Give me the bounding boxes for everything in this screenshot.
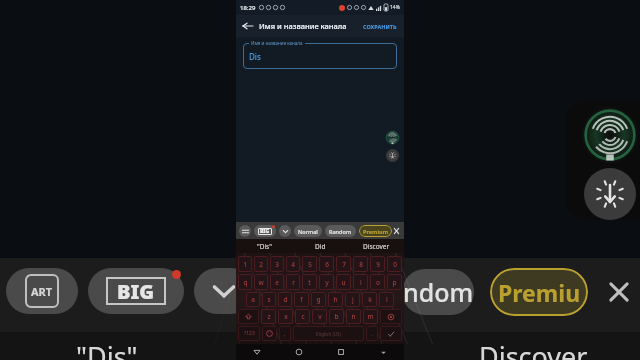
button[interactable]: Keyboard settings (239, 225, 251, 237)
button[interactable]: v (312, 309, 327, 324)
button[interactable]: 5 (302, 256, 317, 272)
button[interactable]: w (254, 274, 268, 290)
button[interactable]: Shift (238, 309, 259, 324)
button[interactable]: Back (241, 19, 255, 33)
staticText: s (267, 295, 271, 304)
button[interactable]: n (346, 309, 361, 324)
button[interactable]: Backspace (380, 309, 402, 324)
button[interactable]: Premium (359, 225, 392, 237)
staticText: g (316, 295, 321, 304)
staticText: 6 (325, 260, 329, 269)
button[interactable]: h (328, 292, 343, 307)
button[interactable]: Did (292, 239, 348, 253)
button[interactable]: Hide keyboard (362, 344, 404, 360)
button[interactable]: c (295, 309, 310, 324)
button[interactable]: r (286, 274, 300, 290)
staticText: y (325, 278, 329, 287)
button[interactable]: Dis (243, 43, 397, 69)
button[interactable]: Premiu (490, 268, 588, 316)
button[interactable]: Brightness (386, 149, 399, 162)
staticText: Discover (363, 242, 390, 251)
button[interactable]: Enter (380, 326, 402, 341)
staticText: u (341, 278, 346, 287)
button[interactable]: 0 (387, 256, 402, 272)
button[interactable]: Fingerprint unlock (385, 130, 400, 145)
staticText: a (251, 295, 255, 304)
staticText: 1 (243, 260, 247, 269)
staticText: Имя и название канала (251, 40, 303, 46)
staticText: h (333, 295, 338, 304)
staticText: 4 (291, 260, 295, 269)
button[interactable]: 6 (319, 256, 334, 272)
staticText: d (283, 295, 288, 304)
staticText: k (368, 295, 372, 304)
button[interactable]: l (379, 292, 394, 307)
button[interactable]: Home (278, 344, 320, 360)
button[interactable]: BIG (88, 268, 184, 314)
staticText: BIG (260, 228, 270, 235)
staticText: f (300, 295, 303, 304)
button[interactable]: Discover (348, 239, 404, 253)
button[interactable]: . (366, 326, 378, 341)
staticText: 7 (342, 260, 346, 269)
button[interactable]: o (370, 274, 385, 290)
button[interactable]: 8 (353, 256, 368, 272)
button[interactable]: Back (236, 344, 278, 360)
button[interactable]: 1 (238, 256, 252, 272)
button[interactable]: g (311, 292, 326, 307)
button[interactable]: BIG (254, 225, 276, 237)
staticText: q (243, 278, 248, 287)
button[interactable]: e (270, 274, 284, 290)
button[interactable]: 3 (270, 256, 284, 272)
button[interactable]: ndom (402, 269, 474, 315)
staticText: ?123 (244, 330, 255, 337)
button[interactable]: p (387, 274, 402, 290)
button[interactable]: y (319, 274, 334, 290)
staticText: ART (31, 284, 53, 299)
button[interactable]: 4 (286, 256, 300, 272)
staticText: p (392, 278, 397, 287)
button[interactable]: q (238, 274, 252, 290)
button[interactable]: СОХРАНИТЬ (361, 20, 399, 33)
button[interactable]: j (345, 292, 360, 307)
staticText: , (284, 330, 286, 338)
staticText: Premiu (498, 277, 581, 308)
staticText: Normal (298, 228, 318, 235)
button[interactable]: ART (6, 268, 78, 314)
button[interactable]: s (262, 292, 276, 307)
button[interactable]: Brightness (584, 168, 636, 220)
button[interactable]: f (294, 292, 309, 307)
button[interactable]: a (246, 292, 260, 307)
button[interactable]: d (278, 292, 292, 307)
button[interactable]: k (362, 292, 377, 307)
button[interactable]: Close (602, 275, 636, 309)
button[interactable]: 9 (370, 256, 385, 272)
button[interactable]: Fingerprint unlock (581, 106, 639, 164)
staticText: СОХРАНИТЬ (363, 23, 397, 30)
button[interactable]: 2 (254, 256, 268, 272)
staticText: 5 (308, 260, 312, 269)
button[interactable]: English (US) (293, 326, 364, 341)
button[interactable]: i (353, 274, 368, 290)
staticText: 18:29 (240, 4, 256, 12)
staticText: BIG (117, 278, 155, 305)
button[interactable]: Recents (320, 344, 362, 360)
button[interactable]: m (363, 309, 378, 324)
button[interactable]: Normal (294, 225, 322, 237)
button[interactable]: , (279, 326, 291, 341)
button[interactable]: x (278, 309, 293, 324)
button[interactable]: Random (325, 225, 356, 237)
button[interactable] (194, 268, 254, 314)
button[interactable]: z (261, 309, 276, 324)
button[interactable]: t (302, 274, 317, 290)
button[interactable]: ?123 (238, 326, 260, 341)
button[interactable]: Expand (279, 225, 291, 237)
button[interactable]: b (329, 309, 344, 324)
staticText: t (308, 278, 311, 287)
button[interactable]: "Dis" (236, 239, 292, 253)
button[interactable]: u (336, 274, 351, 290)
button[interactable]: Emoji (262, 326, 277, 341)
button[interactable]: Close (392, 226, 401, 236)
button[interactable]: 7 (336, 256, 351, 272)
staticText: z (267, 312, 271, 321)
